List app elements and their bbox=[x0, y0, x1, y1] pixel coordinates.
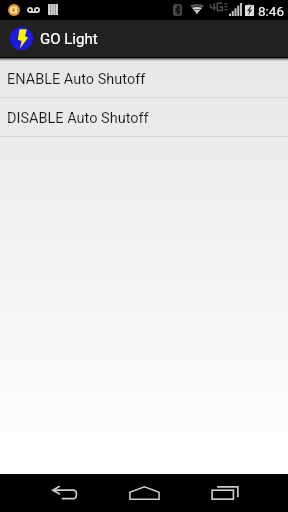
staticText: GO Light bbox=[40, 30, 98, 48]
button[interactable]: Recents bbox=[195, 474, 255, 512]
staticText: 8:46 bbox=[258, 3, 285, 19]
button[interactable]: DISABLE Auto Shutoff bbox=[0, 98, 288, 136]
button[interactable]: Home bbox=[114, 474, 174, 512]
staticText: ENABLE Auto Shutoff bbox=[7, 71, 146, 88]
staticText: DISABLE Auto Shutoff bbox=[7, 110, 149, 127]
button[interactable]: Back bbox=[35, 474, 95, 512]
button[interactable]: ENABLE Auto Shutoff bbox=[0, 58, 288, 97]
